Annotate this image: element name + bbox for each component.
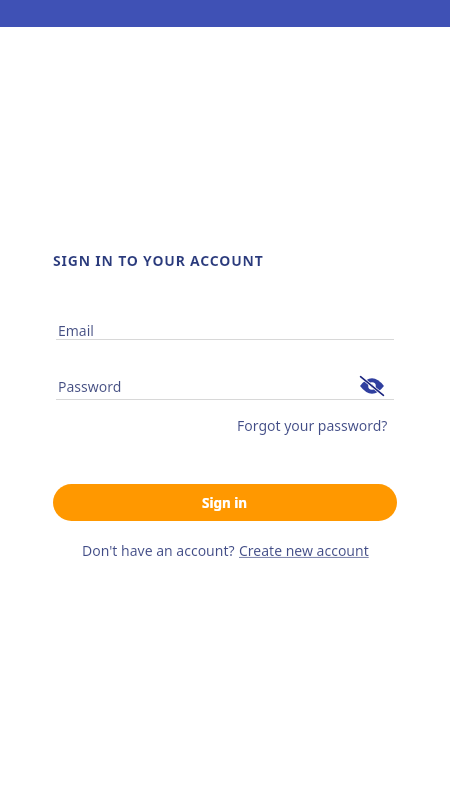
staticText: Email — [58, 321, 94, 340]
button[interactable]: Forgot your password? — [237, 416, 388, 435]
button[interactable]: Email input field — [56, 321, 394, 340]
staticText: SIGN IN TO YOUR ACCOUNT — [53, 251, 264, 270]
staticText: Password — [58, 377, 122, 396]
button[interactable]: Create new account — [239, 541, 373, 560]
button[interactable]: Password input field — [56, 377, 394, 400]
staticText: Create new account — [239, 541, 373, 560]
button[interactable]: Sign in — [53, 484, 397, 521]
staticText: Sign in — [202, 494, 248, 512]
staticText: Forgot your password? — [237, 416, 388, 435]
button[interactable]: Show password — [358, 372, 386, 400]
staticText: Don't have an account? — [82, 541, 239, 560]
